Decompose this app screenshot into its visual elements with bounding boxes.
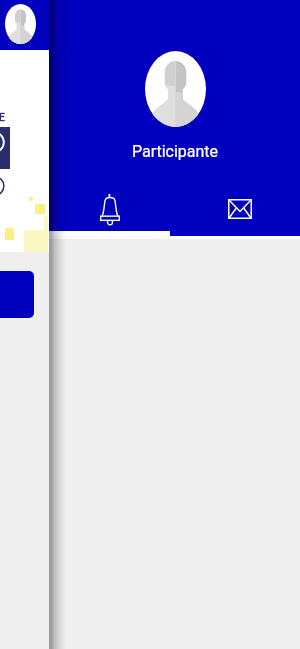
staticText: NOME: [0, 111, 5, 123]
button[interactable]: [0, 271, 34, 318]
button[interactable]: Messages: [175, 188, 300, 236]
staticText: Participante: [100, 142, 250, 161]
button[interactable]: Notifications: [45, 188, 175, 236]
